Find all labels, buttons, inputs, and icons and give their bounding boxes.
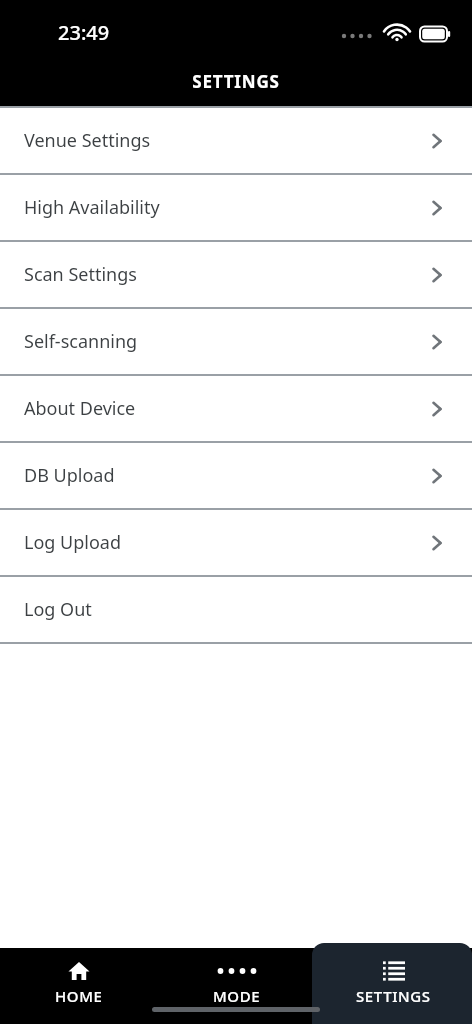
other: Settings [383,960,405,982]
button[interactable]: High Availability [0,175,472,240]
staticText: Log Upload [24,530,426,555]
button[interactable]: Venue Settings [0,108,472,173]
button[interactable]: Mode [158,948,315,1024]
staticText: SETTINGS [192,70,280,93]
button[interactable]: Log Out [0,577,472,642]
staticText: SETTINGS [356,986,431,1006]
staticText: About Device [24,396,426,421]
button[interactable]: About Device [0,376,472,441]
staticText: DB Upload [24,463,426,488]
button[interactable]: Log Upload [0,510,472,575]
staticText: Scan Settings [24,262,426,287]
button[interactable]: Scan Settings [0,242,472,307]
button[interactable]: Settings [315,948,472,1024]
other: Mode [216,964,258,978]
button[interactable]: DB Upload [0,443,472,508]
staticText: Self-scanning [24,329,426,354]
staticText: HOME [55,986,103,1006]
staticText: MODE [213,986,261,1006]
button[interactable]: Self-scanning [0,309,472,374]
staticText: 23:49 [58,19,110,46]
staticText: High Availability [24,195,426,220]
staticText: Log Out [24,597,448,622]
other: Home [67,959,91,983]
staticText: Venue Settings [24,128,426,153]
button[interactable]: Home [0,948,158,1024]
